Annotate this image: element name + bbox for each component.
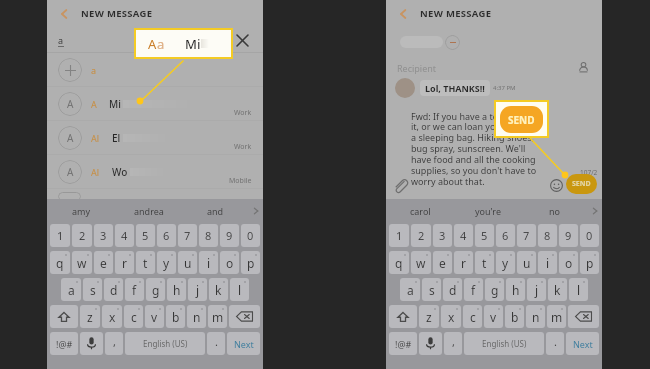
- button[interactable]: n: [526, 305, 545, 328]
- button[interactable]: 0: [580, 224, 599, 247]
- button[interactable]: English (US): [464, 332, 544, 355]
- button[interactable]: l: [230, 278, 249, 301]
- button[interactable]: a: [400, 278, 420, 301]
- button[interactable]: q: [50, 251, 70, 274]
- button[interactable]: b: [505, 305, 524, 328]
- button[interactable]: Shift: [50, 305, 78, 328]
- button[interactable]: a: [47, 53, 263, 87]
- button[interactable]: Attach file: [392, 177, 408, 193]
- button[interactable]: g: [485, 278, 504, 301]
- button[interactable]: e: [433, 251, 452, 274]
- button[interactable]: b: [166, 305, 185, 328]
- button[interactable]: Back: [55, 5, 72, 22]
- button[interactable]: 0: [241, 224, 260, 247]
- button[interactable]: u: [178, 251, 197, 274]
- button[interactable]: p: [580, 251, 599, 274]
- button[interactable]: 5: [475, 224, 494, 247]
- button[interactable]: carol: [386, 199, 454, 222]
- button[interactable]: More suggestions: [588, 199, 602, 222]
- button[interactable]: y: [157, 251, 176, 274]
- button[interactable]: p: [241, 251, 260, 274]
- button[interactable]: r: [115, 251, 134, 274]
- button[interactable]: A: [47, 121, 263, 155]
- button[interactable]: q: [389, 251, 409, 274]
- button[interactable]: amy: [47, 199, 115, 222]
- button[interactable]: and: [182, 199, 249, 222]
- button[interactable]: 8: [199, 224, 218, 247]
- button[interactable]: m: [547, 305, 566, 328]
- button[interactable]: ,: [105, 332, 123, 355]
- button[interactable]: A: [47, 87, 263, 121]
- button[interactable]: d: [443, 278, 462, 301]
- button[interactable]: w: [411, 251, 431, 274]
- button[interactable]: English (US): [125, 332, 205, 355]
- button[interactable]: y: [496, 251, 515, 274]
- button[interactable]: h: [167, 278, 186, 301]
- button[interactable]: Voice input: [80, 332, 103, 355]
- button[interactable]: More suggestions: [249, 199, 263, 222]
- button[interactable]: .: [207, 332, 225, 355]
- button[interactable]: Next: [566, 332, 599, 355]
- button[interactable]: 3: [94, 224, 113, 247]
- button[interactable]: Back: [394, 5, 411, 22]
- button[interactable]: SEND: [500, 106, 543, 133]
- button[interactable]: v: [484, 305, 503, 328]
- button[interactable]: Clear search: [233, 31, 252, 50]
- button[interactable]: t: [136, 251, 155, 274]
- button[interactable]: Emoji: [549, 178, 563, 192]
- button[interactable]: c: [124, 305, 143, 328]
- button[interactable]: j: [188, 278, 207, 301]
- button[interactable]: 9: [559, 224, 578, 247]
- button[interactable]: i: [199, 251, 218, 274]
- button[interactable]: Shift: [389, 305, 417, 328]
- button[interactable]: x: [441, 305, 461, 328]
- button[interactable]: 6: [157, 224, 176, 247]
- button[interactable]: l: [569, 278, 588, 301]
- button[interactable]: s: [422, 278, 441, 301]
- button[interactable]: SEND: [566, 174, 597, 194]
- button[interactable]: z: [419, 305, 439, 328]
- button[interactable]: Backspace: [229, 305, 260, 328]
- button[interactable]: 1: [389, 224, 409, 247]
- button[interactable]: no: [521, 199, 588, 222]
- button[interactable]: 5: [136, 224, 155, 247]
- button[interactable]: n: [187, 305, 206, 328]
- button[interactable]: c: [463, 305, 482, 328]
- button[interactable]: .: [546, 332, 564, 355]
- button[interactable]: ,: [444, 332, 462, 355]
- button[interactable]: w: [72, 251, 92, 274]
- button[interactable]: !@#: [389, 332, 417, 355]
- button[interactable]: Voice input: [419, 332, 442, 355]
- button[interactable]: z: [80, 305, 100, 328]
- button[interactable]: d: [104, 278, 123, 301]
- button[interactable]: 7: [517, 224, 536, 247]
- button[interactable]: m: [208, 305, 227, 328]
- button[interactable]: t: [475, 251, 494, 274]
- button[interactable]: you're: [454, 199, 521, 222]
- button[interactable]: e: [94, 251, 113, 274]
- button[interactable]: k: [209, 278, 228, 301]
- button[interactable]: v: [145, 305, 164, 328]
- button[interactable]: andrea: [115, 199, 182, 222]
- button[interactable]: 3: [433, 224, 452, 247]
- button[interactable]: A: [47, 155, 263, 189]
- button[interactable]: 2: [411, 224, 431, 247]
- button[interactable]: Backspace: [568, 305, 599, 328]
- button[interactable]: 8: [538, 224, 557, 247]
- button[interactable]: 4: [454, 224, 473, 247]
- button[interactable]: j: [527, 278, 546, 301]
- button[interactable]: 4: [115, 224, 134, 247]
- button[interactable]: 2: [72, 224, 92, 247]
- button[interactable]: f: [125, 278, 144, 301]
- button[interactable]: Next: [227, 332, 260, 355]
- button[interactable]: 9: [220, 224, 239, 247]
- button[interactable]: o: [220, 251, 239, 274]
- button[interactable]: r: [454, 251, 473, 274]
- button[interactable]: k: [548, 278, 567, 301]
- button[interactable]: x: [102, 305, 122, 328]
- button[interactable]: 1: [50, 224, 70, 247]
- button[interactable]: g: [146, 278, 165, 301]
- button[interactable]: !@#: [50, 332, 78, 355]
- button[interactable]: 6: [496, 224, 515, 247]
